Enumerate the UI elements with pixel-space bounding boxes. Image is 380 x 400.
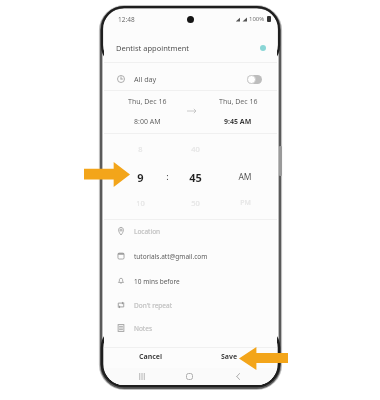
staticText: tutorials.att@gmail.com — [134, 252, 208, 261]
button[interactable]: Cancel — [123, 348, 179, 365]
button[interactable]: 40 — [181, 142, 209, 156]
button[interactable]: All day toggle — [247, 75, 262, 84]
staticText: PM — [240, 198, 251, 208]
button[interactable]: 50 — [181, 196, 209, 210]
staticText: 50 — [191, 198, 200, 208]
staticText: 45 — [189, 170, 202, 184]
button[interactable]: 8 — [126, 142, 154, 156]
staticText: 10 — [136, 198, 145, 208]
staticText: Dentist appointment — [116, 43, 190, 53]
button[interactable]: Recents — [134, 368, 150, 384]
button[interactable]: : — [153, 169, 181, 183]
button[interactable]: tutorials.att@gmail.com — [104, 244, 277, 268]
button[interactable]: PM — [231, 196, 259, 210]
staticText: Cancel — [139, 352, 163, 362]
staticText: AM — [238, 171, 252, 183]
staticText: 40 — [191, 144, 200, 154]
button[interactable]: Location — [104, 219, 277, 243]
staticText: 9:45 AM — [224, 117, 252, 127]
staticText: All day — [134, 74, 157, 84]
button[interactable]: 45 — [181, 170, 209, 184]
staticText: Location — [134, 227, 161, 236]
button[interactable]: Home — [181, 368, 197, 384]
staticText: Thu, Dec 16 — [219, 97, 258, 107]
staticText: : — [166, 170, 169, 182]
button[interactable]: Notes — [104, 316, 277, 340]
button[interactable]: 8:00 AM — [134, 117, 161, 127]
staticText: Thu, Dec 16 — [128, 97, 167, 107]
button[interactable]: Back — [230, 368, 246, 384]
staticText: 10 mins before — [134, 277, 180, 286]
staticText: Don't repeat — [134, 301, 173, 310]
button[interactable]: 9 — [126, 170, 154, 184]
staticText: Notes — [134, 324, 152, 333]
staticText: 100% — [249, 15, 265, 23]
button[interactable]: 10 mins before — [104, 269, 277, 293]
button[interactable]: Dentist appointment — [104, 38, 277, 58]
staticText: 8 — [138, 144, 143, 154]
button[interactable]: All day — [104, 69, 277, 89]
button[interactable]: Save — [201, 348, 257, 365]
button[interactable]: 10 — [126, 196, 154, 210]
staticText: 8:00 AM — [134, 117, 161, 127]
staticText: 9 — [137, 170, 144, 184]
staticText: 12:48 — [118, 15, 135, 24]
button[interactable]: Don't repeat — [104, 293, 277, 317]
button[interactable]: 9:45 AM — [224, 117, 252, 127]
staticText: Save — [221, 352, 238, 362]
button[interactable]: AM — [231, 170, 259, 184]
